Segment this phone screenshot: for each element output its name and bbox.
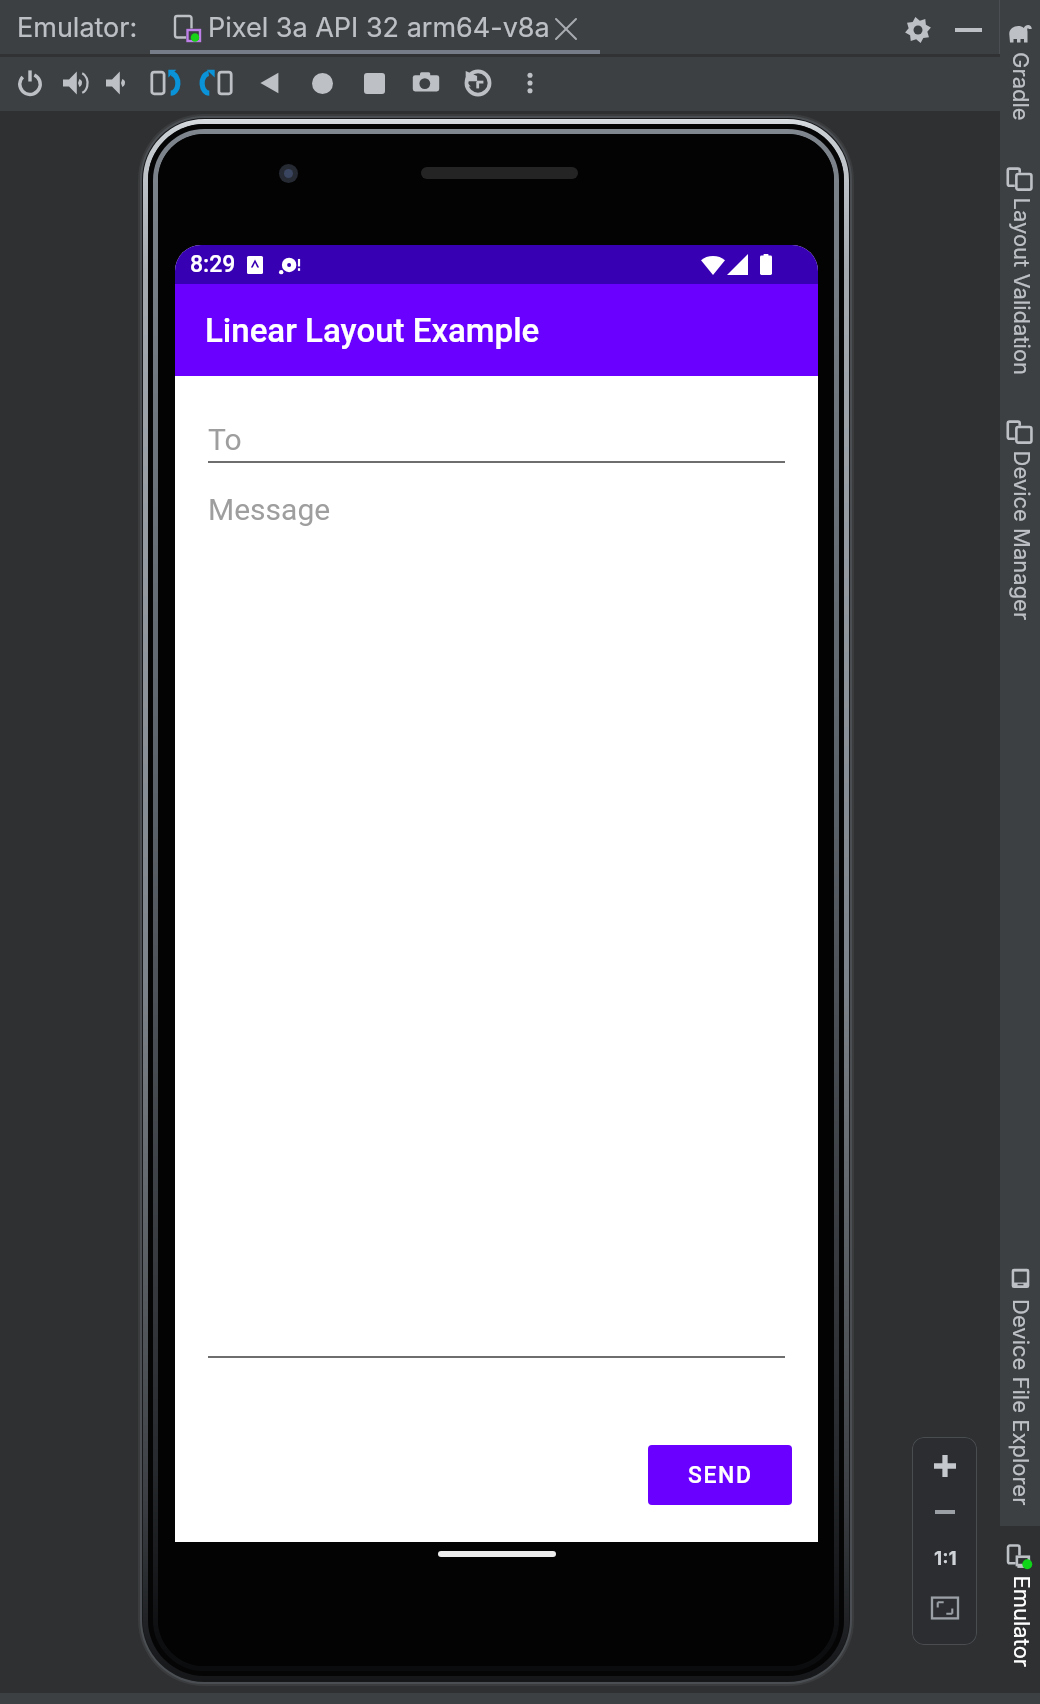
staticText: 1:1 (934, 1547, 957, 1570)
button[interactable]: Layout Validation (1000, 160, 1040, 385)
button[interactable]: Zoom to fit (924, 1587, 966, 1629)
staticText: Emulator: (17, 11, 138, 44)
staticText: Pixel 3a API 32 arm64-v8a (208, 11, 550, 44)
button[interactable]: Zoom in (924, 1445, 966, 1487)
staticText: 8:29 (190, 251, 236, 278)
button[interactable]: 1:1 (924, 1537, 966, 1579)
staticText: Gradle (1007, 52, 1034, 121)
staticText: Device Manager (1007, 450, 1034, 620)
button[interactable]: Gradle (1000, 14, 1040, 132)
staticText: To (208, 422, 242, 457)
button[interactable]: Minimize (950, 12, 986, 48)
staticText: Linear Layout Example (205, 311, 540, 350)
button[interactable]: Settings (900, 12, 936, 48)
button[interactable]: Device File Explorer (1000, 1261, 1040, 1506)
button[interactable]: Close tab (556, 19, 576, 39)
button[interactable]: Home (303, 64, 341, 102)
button[interactable]: Volume up (56, 64, 94, 102)
button[interactable]: More (511, 64, 549, 102)
staticText: Emulator (1007, 1575, 1034, 1667)
button[interactable]: Rotate left (146, 64, 184, 102)
staticText: Device File Explorer (1007, 1299, 1034, 1506)
staticText: Layout Validation (1007, 197, 1034, 375)
button[interactable]: Rotate right (199, 64, 237, 102)
button[interactable]: Emulator (1000, 1526, 1040, 1693)
button[interactable]: Zoom out (924, 1491, 966, 1533)
staticText: Message (208, 492, 331, 527)
button[interactable]: SEND (648, 1445, 792, 1505)
button[interactable]: Screen record (459, 64, 497, 102)
button[interactable]: Screenshot (407, 64, 445, 102)
button[interactable]: Device Manager (1000, 413, 1040, 635)
button[interactable]: Overview (355, 64, 393, 102)
button[interactable]: Volume down (99, 64, 137, 102)
button[interactable]: Back (251, 64, 289, 102)
button[interactable]: Pixel 3a API 32 arm64-v8a (150, 0, 600, 56)
button[interactable]: Power (11, 64, 49, 102)
staticText: SEND (688, 1462, 753, 1489)
